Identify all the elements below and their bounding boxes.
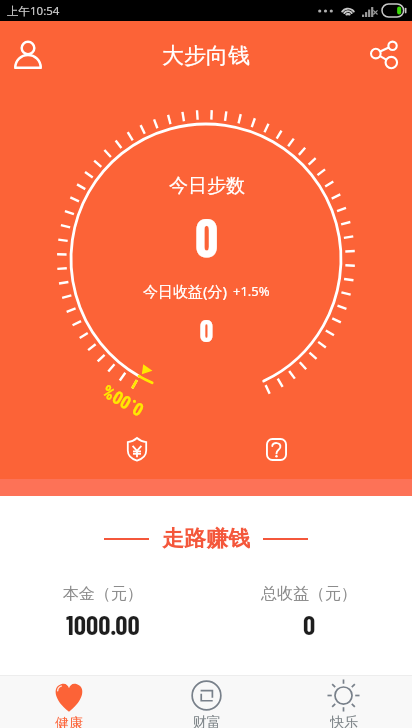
button[interactable]: 健康 xyxy=(0,676,138,728)
staticText: 快乐 xyxy=(330,714,358,728)
staticText: 0 xyxy=(194,202,220,270)
staticText: 健康 xyxy=(55,715,83,728)
staticText: 本金（元） xyxy=(63,584,143,604)
staticText: 总收益（元） xyxy=(261,584,357,604)
staticText: 上午10:54 xyxy=(7,3,60,19)
staticText: 0.00% xyxy=(98,380,147,421)
button[interactable]: Profile xyxy=(4,30,52,78)
staticText: 财富 xyxy=(193,714,221,728)
button[interactable]: 财富 xyxy=(138,676,275,728)
button[interactable]: Share xyxy=(360,30,408,78)
staticText: 1000.00 xyxy=(66,608,140,640)
staticText: 大步向钱 xyxy=(162,42,250,70)
button[interactable]: 快乐 xyxy=(275,676,412,728)
staticText: 今日步数 xyxy=(169,174,245,198)
button[interactable]: Help xyxy=(252,425,300,473)
staticText: 走路赚钱 xyxy=(162,525,250,553)
staticText: 0 xyxy=(199,310,214,350)
staticText: +1.5% xyxy=(233,282,270,300)
staticText: 0 xyxy=(303,608,316,640)
button[interactable]: Insurance xyxy=(113,425,161,473)
staticText: 今日收益(分) xyxy=(143,281,228,301)
